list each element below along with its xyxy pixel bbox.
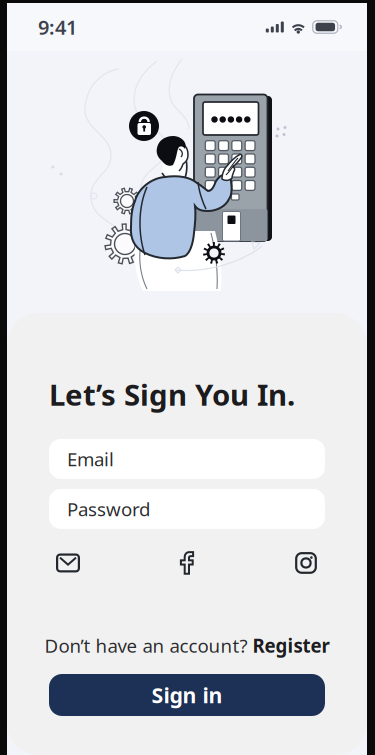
staticText: Register xyxy=(252,633,329,658)
button[interactable]: Sign in with Instagram xyxy=(283,545,329,581)
staticText: Let’s Sign You In. xyxy=(49,375,295,414)
button[interactable]: Sign in with Facebook xyxy=(164,545,210,581)
staticText: Password xyxy=(67,497,150,521)
staticText: Sign in xyxy=(151,681,222,709)
button[interactable]: Email xyxy=(49,439,325,479)
staticText: Don’t have an account? xyxy=(44,633,252,658)
button[interactable]: Password xyxy=(49,489,325,529)
staticText: 9:41 xyxy=(38,14,77,40)
button[interactable]: Sign in xyxy=(49,674,325,716)
staticText: Email xyxy=(67,447,114,471)
button[interactable]: Sign in with Email xyxy=(45,545,91,581)
button[interactable]: Register xyxy=(252,633,329,658)
